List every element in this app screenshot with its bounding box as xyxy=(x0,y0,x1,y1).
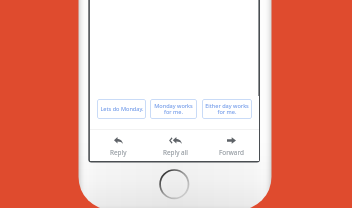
button[interactable]: Reply all xyxy=(147,130,203,157)
button[interactable]: Either day works for me. xyxy=(202,99,252,119)
staticText: Lets do Monday. xyxy=(100,105,144,113)
button[interactable]: Reply xyxy=(90,130,147,157)
staticText: Either day works for me. xyxy=(205,102,249,116)
staticText: Reply all xyxy=(163,148,188,157)
button[interactable]: Lets do Monday. xyxy=(97,99,146,119)
staticText: Monday works for me. xyxy=(154,102,193,116)
staticText: Forward xyxy=(219,148,244,157)
other: Home xyxy=(0,0,352,208)
button[interactable]: Forward xyxy=(203,130,259,157)
button[interactable]: Monday works for me. xyxy=(150,99,197,119)
staticText: Reply xyxy=(110,148,127,157)
